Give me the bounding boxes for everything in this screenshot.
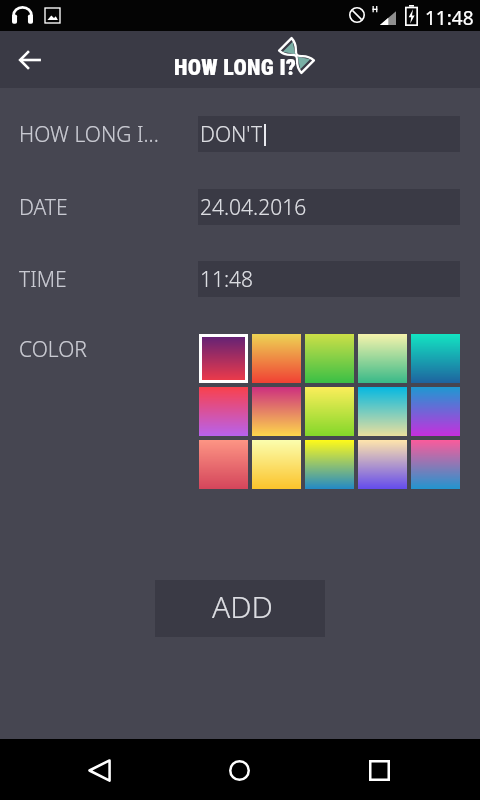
button[interactable]: Colour 11 [199,440,248,489]
button[interactable]: Colour 5 [411,334,460,383]
button[interactable]: Colour 10 [411,387,460,436]
button[interactable]: Colour 3 [305,334,354,383]
button[interactable]: Back [6,36,54,84]
button[interactable]: Colour 12 [252,440,301,489]
button[interactable]: Colour 7 [252,387,301,436]
button[interactable]: Colour 2 [252,334,301,383]
staticText: DON'T [200,120,263,149]
button[interactable]: Colour 6 [199,387,248,436]
staticText: HOW LONG I... [19,120,159,149]
button[interactable]: Colour 9 [358,387,407,436]
button[interactable]: 24.04.2016 [198,189,460,225]
button[interactable]: Colour 1 [199,334,248,383]
button[interactable]: Back [76,747,123,794]
button[interactable]: Colour 4 [358,334,407,383]
staticText: HOW LONG I? [174,55,297,81]
button[interactable]: Colour 8 [305,387,354,436]
button[interactable]: Recent apps [356,747,403,794]
staticText: COLOR [19,335,87,364]
button[interactable]: Colour 13 [305,440,354,489]
staticText: DATE [19,193,68,222]
button[interactable]: Home [216,747,263,794]
staticText: 11:48 [425,5,474,31]
staticText: TIME [19,265,67,294]
button[interactable]: DON'T [198,116,460,152]
staticText: 11:48 [200,265,254,294]
button[interactable]: Colour 14 [358,440,407,489]
button[interactable]: 11:48 [198,261,460,297]
button[interactable]: Colour 15 [411,440,460,489]
button[interactable]: ADD [155,580,325,637]
staticText: ADD [212,586,273,627]
staticText: 24.04.2016 [200,193,307,222]
